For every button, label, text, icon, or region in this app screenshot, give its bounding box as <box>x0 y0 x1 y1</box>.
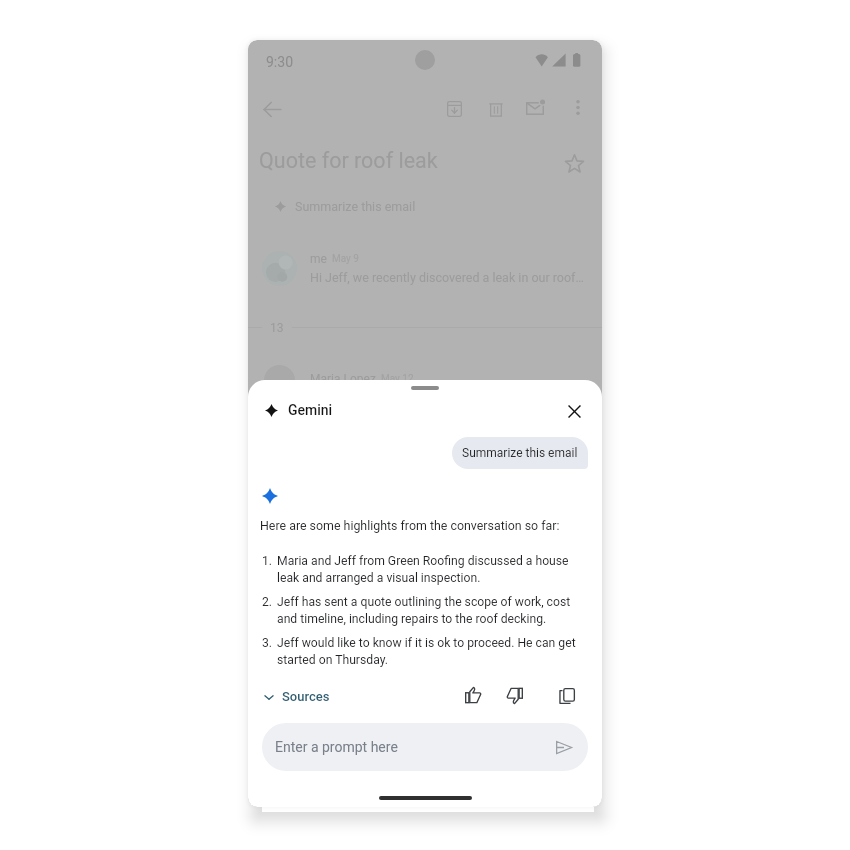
staticText: Sources <box>282 689 330 704</box>
button[interactable]: Delete <box>478 91 514 127</box>
other: Send <box>556 741 572 754</box>
staticText: Gemini <box>288 402 333 418</box>
staticText: 3. <box>262 636 273 650</box>
button[interactable]: More options <box>561 91 594 124</box>
button[interactable]: Archive <box>436 91 472 127</box>
button[interactable]: Summarize this email <box>452 437 588 469</box>
button[interactable]: Mark unread <box>517 90 553 126</box>
button[interactable]: 13 <box>262 313 292 343</box>
staticText: Jeff has sent a quote outlining the scop… <box>277 595 571 626</box>
staticText: 13 <box>270 321 284 335</box>
button[interactable]: Enter a prompt here <box>262 723 588 771</box>
staticText: May 12 <box>381 373 414 385</box>
button[interactable]: Back <box>254 91 290 127</box>
staticText: me <box>310 252 327 266</box>
button[interactable]: Good response <box>456 678 490 712</box>
button[interactable]: Summarize this email <box>271 195 420 218</box>
staticText: Here are some highlights from the conver… <box>260 518 560 533</box>
staticText: Jeff would like to know if it is ok to p… <box>277 636 576 667</box>
staticText: Hi Jeff, we recently discovered a leak i… <box>310 270 584 285</box>
staticText: Maria Lopez <box>310 372 376 386</box>
button[interactable]: Close <box>558 395 590 427</box>
button[interactable]: Copy <box>550 679 584 713</box>
staticText: 9:30 <box>266 54 293 70</box>
button[interactable]: Gemini <box>265 402 333 418</box>
button[interactable]: Sources <box>259 684 334 709</box>
button[interactable]: Star <box>558 147 590 179</box>
staticText: 2. <box>262 595 273 609</box>
staticText: Maria and Jeff from Green Roofing discus… <box>277 554 569 585</box>
staticText: Summarize this email <box>295 199 416 214</box>
staticText: May 9 <box>332 253 359 265</box>
staticText: 1. <box>262 554 273 568</box>
staticText: Quote for roof leak <box>259 148 438 173</box>
staticText: Summarize this email <box>462 446 578 460</box>
button[interactable]: Bad response <box>498 679 532 713</box>
staticText: Enter a prompt here <box>275 739 398 755</box>
